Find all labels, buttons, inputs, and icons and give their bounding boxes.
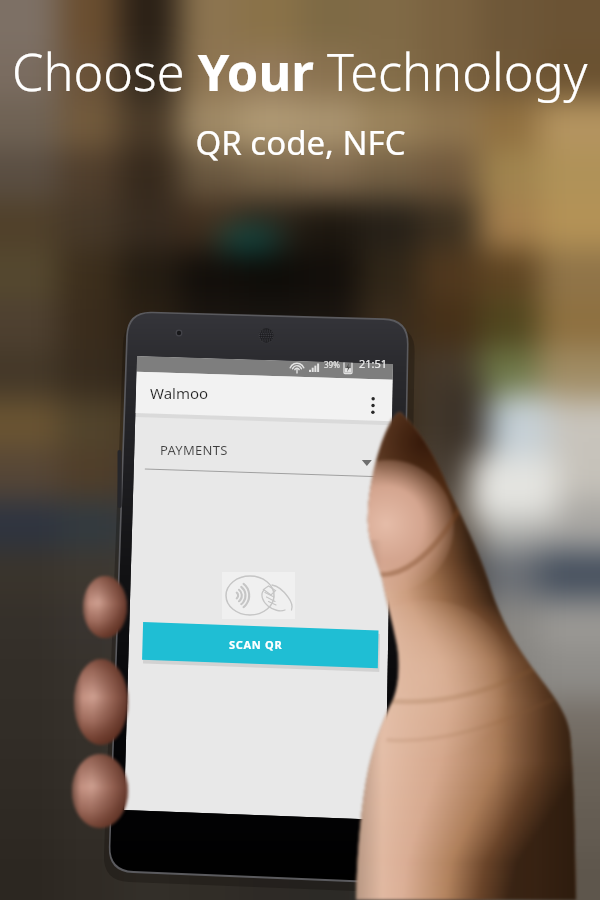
button[interactable]: Pay with NFC (222, 572, 295, 619)
staticText: PAYMENTS (160, 441, 228, 459)
staticText: 39% (324, 359, 340, 370)
button[interactable]: SCAN QR (138, 625, 373, 664)
staticText: QR code, NFC (195, 120, 406, 165)
button[interactable]: More options (358, 378, 390, 410)
staticText: Choose Your Technology (12, 37, 588, 106)
staticText: Walmoo (150, 383, 209, 403)
button[interactable]: PAYMENTS (146, 428, 374, 472)
staticText: 21:51 (359, 356, 388, 371)
button[interactable]: Walmoo (137, 372, 393, 414)
staticText: SCAN QR (229, 637, 283, 652)
